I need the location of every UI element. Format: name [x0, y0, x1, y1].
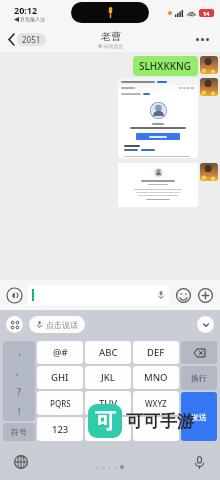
button[interactable]: Hide keyboard [197, 316, 214, 333]
button[interactable]: 点击说话 [29, 316, 85, 333]
staticText: ， [15, 346, 24, 357]
staticText: 可可手游 [126, 411, 194, 432]
button[interactable]: 发送 [181, 392, 217, 441]
other: Dictate [157, 291, 165, 299]
button[interactable]: Contact avatar [200, 163, 218, 181]
staticText: GHI [51, 371, 69, 384]
button[interactable]: 符号 [3, 423, 35, 441]
button[interactable]: Keyboard settings [6, 316, 23, 333]
staticText: DEF [147, 346, 165, 359]
staticText: ? [17, 385, 21, 397]
button[interactable]: ? [3, 381, 35, 401]
button[interactable]: 123 [37, 417, 83, 441]
button[interactable]: TUV [85, 391, 131, 415]
button[interactable]: Voice input [5, 286, 24, 305]
button[interactable]: Voice input [190, 453, 208, 471]
staticText: 。 [15, 366, 24, 377]
button[interactable]: JKL [85, 366, 131, 389]
staticText: PQRS [50, 398, 71, 409]
button[interactable]: Contact avatar [200, 78, 218, 96]
button[interactable]: ， [3, 341, 35, 361]
staticText: 2051 [22, 34, 41, 45]
staticText: 换行 [191, 373, 207, 383]
button[interactable]: 。 [3, 361, 35, 381]
button[interactable]: ! [3, 401, 35, 421]
staticText: TUV [99, 397, 118, 410]
button[interactable]: More options [193, 35, 212, 44]
staticText: 可 [95, 408, 116, 434]
staticText: WXYZ [145, 398, 167, 409]
button[interactable]: More functions [196, 286, 215, 305]
button[interactable]: Image message [118, 78, 198, 158]
staticText: 符号 [11, 427, 27, 437]
staticText: JKL [101, 371, 115, 384]
staticText: 14 [203, 10, 210, 17]
staticText: 豆包输入法 [20, 16, 45, 22]
button[interactable]: Image message [118, 163, 198, 207]
button[interactable]: Contact avatar [200, 56, 218, 74]
staticText: 123 [52, 423, 69, 436]
staticText: @# [53, 346, 68, 359]
button[interactable]: DEF [133, 341, 179, 364]
button[interactable]: WXYZ [133, 391, 179, 415]
staticText: ABC [99, 346, 118, 359]
button[interactable]: 换行 [181, 366, 217, 390]
button[interactable]: Switch language [12, 453, 30, 471]
staticText: SLHXKKNG [139, 59, 192, 73]
staticText: MNO [144, 371, 168, 384]
button[interactable] [85, 417, 131, 441]
button[interactable]: Delete [181, 341, 217, 364]
button[interactable]: GHI [37, 366, 83, 389]
button[interactable]: @# [37, 341, 83, 364]
button[interactable]: PQRS [37, 391, 83, 415]
button[interactable]: SLHXKKNG [133, 56, 198, 76]
button[interactable]: ABC [85, 341, 131, 364]
staticText: 老曹 [101, 30, 121, 43]
staticText: ! [18, 405, 21, 417]
staticText: 未读消息 [103, 43, 123, 49]
button[interactable]: Dictate [28, 285, 169, 305]
staticText: 发送 [191, 412, 207, 422]
button[interactable]: Emoji [174, 286, 193, 305]
button[interactable]: MNO [133, 366, 179, 389]
button[interactable] [133, 417, 179, 441]
staticText: 20:12 [14, 4, 38, 16]
button[interactable]: 2051 [6, 31, 48, 48]
staticText: 点击说话 [46, 320, 78, 330]
